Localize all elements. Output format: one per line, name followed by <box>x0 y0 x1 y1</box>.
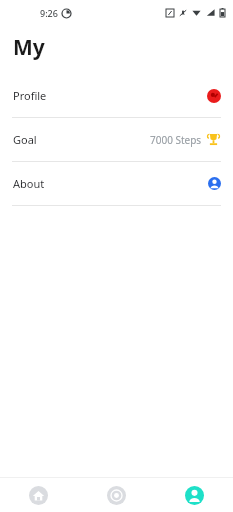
button[interactable]: Home <box>0 478 77 512</box>
staticText: My <box>13 33 45 62</box>
button[interactable]: About <box>0 162 233 206</box>
button[interactable]: Goal <box>0 118 233 162</box>
staticText: Profile <box>13 88 47 103</box>
button[interactable]: Profile <box>155 478 233 512</box>
staticText: About <box>13 176 45 191</box>
button[interactable]: Profile <box>0 74 233 118</box>
button[interactable]: Activity <box>77 478 155 512</box>
staticText: 7000 Steps <box>150 133 202 147</box>
staticText: Goal <box>13 132 37 147</box>
staticText: 9:26 <box>40 7 58 19</box>
